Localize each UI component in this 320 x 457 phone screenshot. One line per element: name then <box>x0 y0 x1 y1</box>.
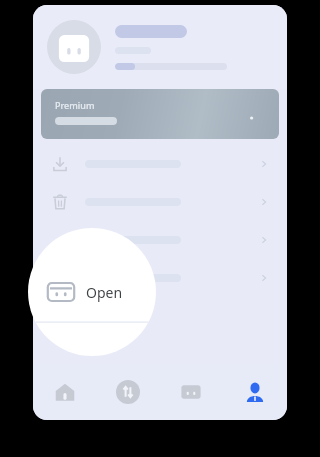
button[interactable] <box>33 259 287 297</box>
button[interactable] <box>33 183 287 221</box>
button[interactable]: Open Telegram <box>28 228 156 356</box>
staticText: Open Telegram <box>86 283 156 302</box>
staticText: Premium <box>55 99 95 111</box>
button[interactable]: Premium <box>41 89 279 139</box>
button[interactable]: Bots <box>159 364 223 420</box>
button[interactable] <box>33 221 287 259</box>
button[interactable]: Transfer <box>96 364 159 420</box>
button[interactable]: Profile <box>223 364 287 420</box>
button[interactable] <box>33 145 287 183</box>
button[interactable]: Home <box>33 364 96 420</box>
button[interactable] <box>33 5 287 89</box>
